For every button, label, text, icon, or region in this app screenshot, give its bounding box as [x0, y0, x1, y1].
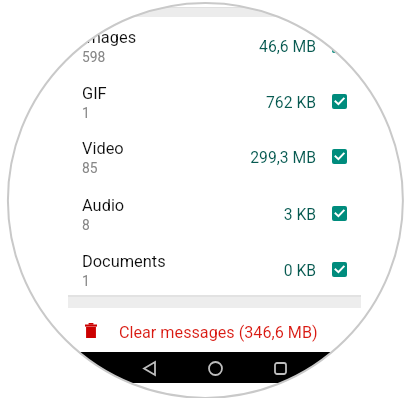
staticText: Images — [82, 28, 137, 47]
button[interactable]: Clear messages (346,6 MB) — [0, 310, 410, 346]
staticText: Video — [82, 139, 124, 158]
button[interactable]: Toggle Audio — [332, 206, 347, 221]
staticText: Clear messages (346,6 MB) — [119, 323, 318, 342]
staticText: Audio — [82, 196, 125, 215]
staticText: 299,3 MB — [176, 148, 316, 166]
staticText: 762 KB — [176, 93, 316, 111]
button[interactable]: Back — [131, 350, 167, 386]
button[interactable]: Toggle Images — [332, 38, 347, 53]
staticText: 598 — [82, 49, 106, 65]
staticText: Documents — [82, 252, 166, 271]
staticText: 46,6 MB — [176, 37, 316, 55]
staticText: 1 — [82, 273, 90, 289]
button[interactable]: Home — [197, 350, 233, 386]
button[interactable]: Toggle Documents — [332, 262, 347, 277]
staticText: 3 KB — [176, 205, 316, 223]
staticText: 0 KB — [176, 261, 316, 279]
button[interactable]: Images — [0, 17, 410, 73]
staticText: 85 — [82, 160, 98, 176]
button[interactable]: Audio — [0, 185, 410, 241]
button[interactable]: GIF — [0, 73, 410, 129]
button[interactable]: Toggle GIF — [332, 94, 347, 109]
staticText: GIF — [82, 84, 107, 103]
button[interactable]: Recents — [262, 350, 298, 386]
button[interactable]: Video — [0, 128, 410, 184]
staticText: 1 — [82, 105, 90, 121]
button[interactable]: Toggle Video — [332, 149, 347, 164]
staticText: 8 — [82, 217, 90, 233]
button[interactable]: Documents — [0, 241, 410, 297]
